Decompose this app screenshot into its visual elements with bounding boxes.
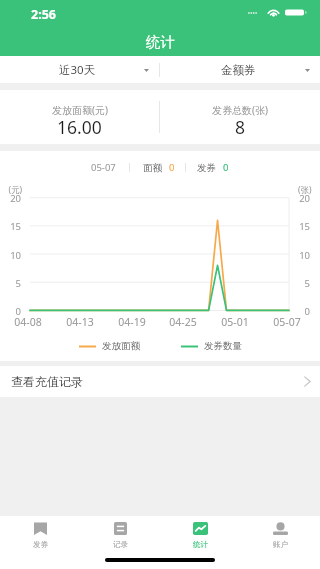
staticText: 0 xyxy=(0,305,21,318)
button[interactable]: 记录 xyxy=(80,516,160,554)
staticText: 发券总数(张) xyxy=(212,103,268,117)
staticText: 04-19 xyxy=(112,315,152,329)
staticText: 5 xyxy=(288,277,310,290)
staticText: 0 xyxy=(169,161,175,174)
staticText: 05-07 xyxy=(91,161,116,174)
staticText: 统计 xyxy=(193,540,208,549)
staticText: 金额券 xyxy=(221,63,256,77)
button[interactable]: 金额券 xyxy=(160,56,320,83)
staticText: 记录 xyxy=(113,540,128,549)
staticText: 10 xyxy=(0,249,21,262)
staticText: 04-08 xyxy=(8,315,48,329)
staticText: 0 xyxy=(223,161,229,174)
staticText: 05-07 xyxy=(267,315,307,329)
staticText: 查看充值记录 xyxy=(11,374,83,389)
staticText: 04-25 xyxy=(163,315,203,329)
staticText: 发券 xyxy=(197,162,216,174)
button[interactable]: 统计 xyxy=(160,516,240,554)
staticText: 发券数量 xyxy=(204,340,242,352)
staticText: 20 xyxy=(0,192,21,205)
staticText: 2:56 xyxy=(31,6,56,23)
staticText: 统计 xyxy=(146,33,175,51)
staticText: 发券 xyxy=(33,540,48,549)
staticText: 面额 xyxy=(143,162,162,174)
staticText: 05-01 xyxy=(215,315,255,329)
button[interactable]: 近30天 xyxy=(0,56,159,83)
staticText: 04-13 xyxy=(60,315,100,329)
staticText: 0 xyxy=(288,305,310,318)
button[interactable]: 账户 xyxy=(240,516,320,554)
button[interactable]: 发券 xyxy=(0,516,80,554)
staticText: 15 xyxy=(288,220,310,233)
staticText: 发放面额(元) xyxy=(52,103,108,117)
staticText: 账户 xyxy=(273,540,288,549)
staticText: 10 xyxy=(288,249,310,262)
staticText: (张) xyxy=(298,184,320,196)
staticText: (元) xyxy=(0,184,22,196)
staticText: 8 xyxy=(235,115,246,139)
button[interactable]: 查看充值记录 xyxy=(0,366,320,397)
staticText: 近30天 xyxy=(59,62,96,78)
staticText: 16.00 xyxy=(57,115,102,139)
staticText: 20 xyxy=(288,192,310,205)
staticText: 5 xyxy=(0,277,21,290)
staticText: 发放面额 xyxy=(102,340,140,352)
staticText: 15 xyxy=(0,220,21,233)
